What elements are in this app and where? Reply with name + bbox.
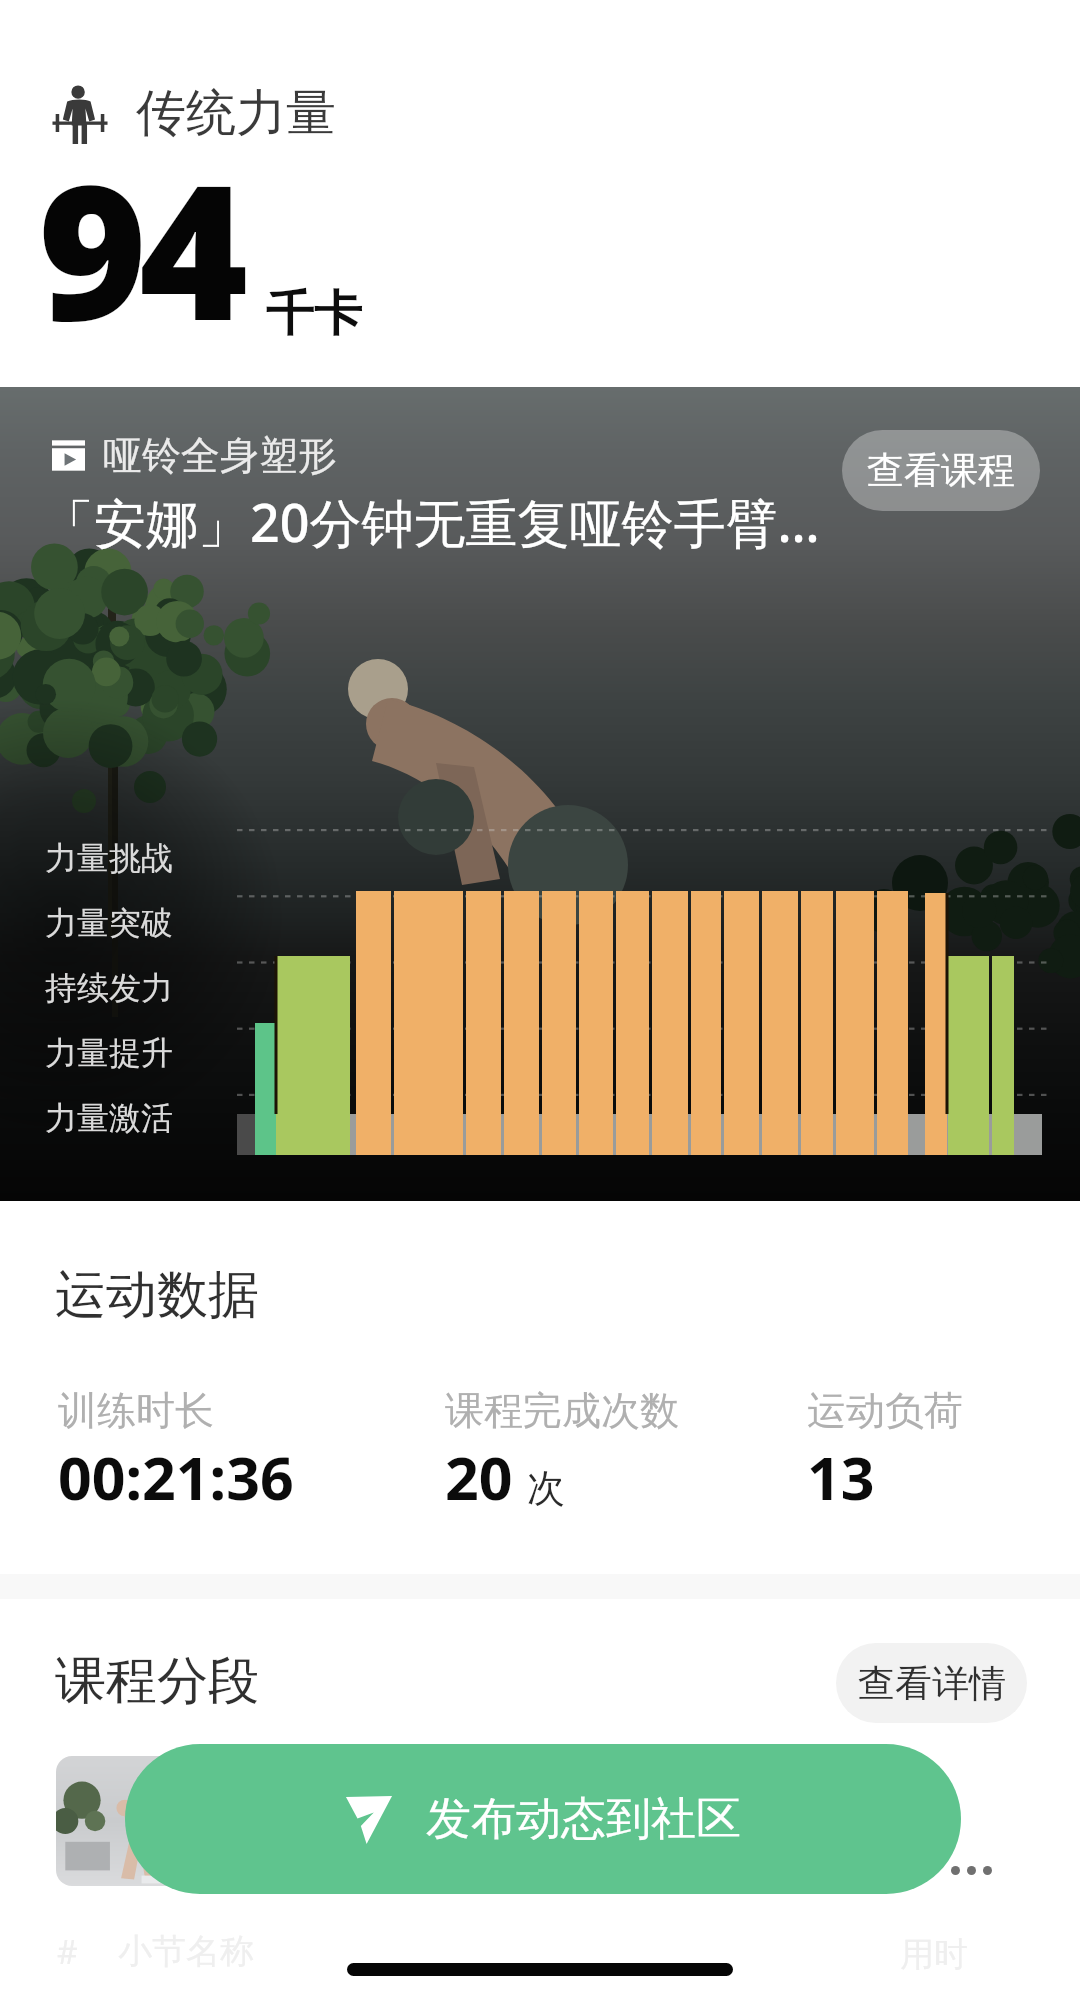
button[interactable]: More options [935,1847,1007,1893]
staticText: 00:21:36 [58,1437,294,1517]
staticText: 「安娜」20分钟无重复哑铃手臂… [42,486,820,557]
button[interactable]: 哑铃全身塑形 [42,425,820,545]
button[interactable]: 查看详情 [836,1643,1027,1723]
staticText: 发布动态到社区 [426,1791,741,1848]
staticText: 运动负荷 [807,1386,963,1435]
staticText: 运动数据 [55,1263,259,1327]
staticText: # [57,1930,78,1974]
staticText: 用时 [900,1933,968,1976]
staticText: 千卡 [266,284,362,344]
staticText: 持续发力 [45,968,173,1008]
staticText: 20 [445,1437,513,1517]
staticText: 力量激活 [45,1098,173,1138]
staticText: 力量挑战 [45,838,173,878]
staticText: 课程完成次数 [445,1386,679,1435]
button[interactable] [56,1756,1024,1886]
staticText: 课程分段 [55,1649,259,1713]
staticText: 传统力量 [136,82,336,145]
staticText: 查看课程 [867,447,1015,494]
staticText: 查看详情 [858,1660,1006,1707]
staticText: 力量突破 [45,903,173,943]
button[interactable]: 传统力量 [48,82,336,145]
staticText: 哑铃全身塑形 [103,431,337,480]
button[interactable]: 查看课程 [842,430,1040,511]
staticText: 小节名称 [118,1930,254,1973]
button[interactable]: 发布动态到社区 [125,1744,961,1894]
staticText: 94 [38,121,240,374]
staticText: 次 [527,1464,565,1512]
staticText: 力量提升 [45,1033,173,1073]
staticText: 训练时长 [58,1386,214,1435]
staticText: 13 [807,1437,875,1517]
